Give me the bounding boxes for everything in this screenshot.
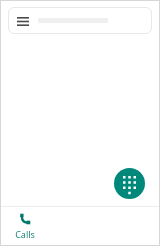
staticText: Calls xyxy=(15,228,35,240)
button[interactable]: Open dialpad xyxy=(114,168,145,199)
button[interactable]: Open navigation menu xyxy=(16,14,30,28)
button[interactable]: Open navigation menu xyxy=(8,7,152,34)
button[interactable]: Calls xyxy=(1,207,49,245)
